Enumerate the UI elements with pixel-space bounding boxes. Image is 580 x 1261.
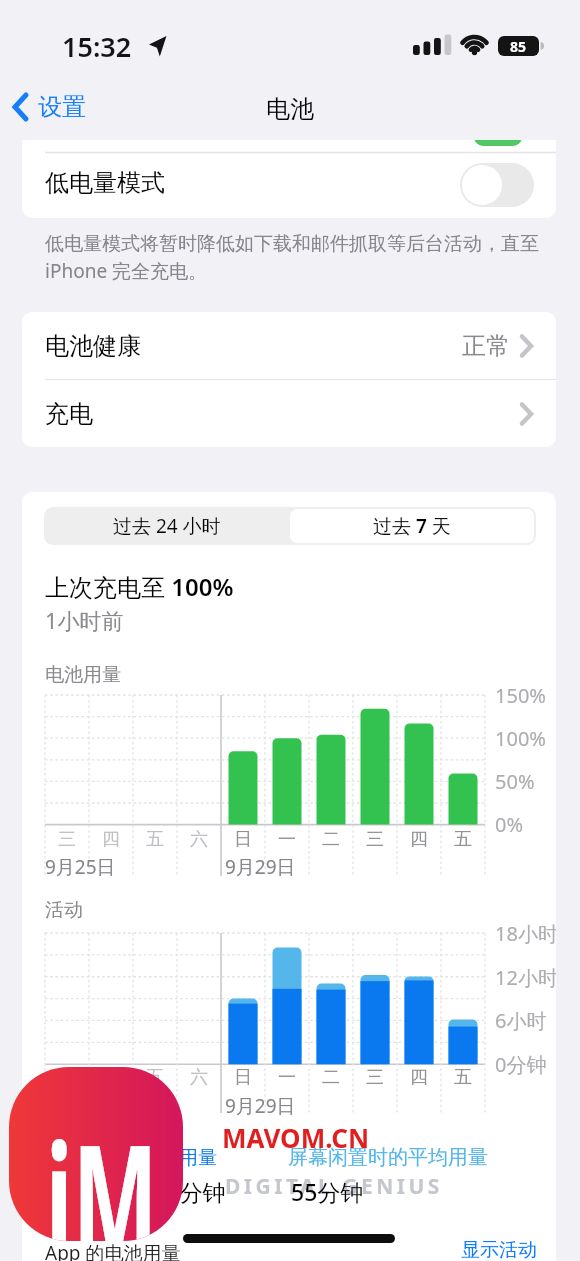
button[interactable]: 电池健康	[22, 312, 556, 380]
staticText: 50%	[495, 768, 535, 795]
staticText: 三	[58, 828, 76, 851]
staticText: 六	[190, 1066, 208, 1089]
button[interactable]: 设置	[12, 92, 86, 122]
staticText: 五	[146, 828, 164, 851]
staticText: 12小时	[495, 964, 556, 991]
staticText: 9月29日	[225, 1093, 296, 1119]
staticText: 设置	[38, 92, 86, 122]
button[interactable]: 显示活动	[461, 1238, 537, 1261]
staticText: 充电	[45, 399, 93, 429]
staticText: 一	[278, 828, 296, 851]
staticText: 电池用量	[45, 663, 121, 687]
staticText: 活动	[45, 898, 83, 922]
staticText: MAVOM.CN	[222, 1120, 370, 1155]
staticText: DIGITAL GENIUS	[225, 1172, 443, 1201]
staticText: 二	[322, 1066, 340, 1089]
staticText: 85	[510, 37, 527, 56]
staticText: 三	[366, 1066, 384, 1089]
staticText: 五	[454, 828, 472, 851]
staticText: 四	[410, 1066, 428, 1089]
staticText: 日	[234, 1066, 252, 1089]
staticText: 低电量模式	[45, 168, 165, 198]
staticText: 三	[366, 828, 384, 851]
staticText: 0分钟	[495, 1051, 547, 1078]
staticText: 0%	[495, 811, 524, 838]
staticText: 五	[454, 1066, 472, 1089]
staticText: 100%	[495, 725, 546, 752]
staticText: 9月25日	[45, 854, 116, 880]
staticText: 正常	[462, 331, 510, 361]
staticText: 电池健康	[45, 331, 141, 361]
staticText: 电池	[266, 94, 314, 124]
button[interactable]	[460, 163, 534, 207]
staticText: App 的电池用量	[45, 1240, 181, 1261]
staticText: 四	[102, 828, 120, 851]
button[interactable]: 低电量模式	[22, 140, 556, 218]
staticText: 屏幕闲置时的平均用量	[288, 1145, 488, 1170]
staticText: 1小时前	[45, 605, 124, 635]
button[interactable]: 充电	[22, 380, 556, 447]
button[interactable]	[290, 509, 534, 543]
staticText: 六	[190, 828, 208, 851]
staticText: 过去 7 天	[373, 513, 451, 539]
staticText: 一	[278, 1066, 296, 1089]
staticText: 日	[234, 828, 252, 851]
staticText: 屏幕开启时的平均用量	[27, 1146, 217, 1170]
staticText: 6小时	[495, 1007, 547, 1034]
staticText: 1小时32分钟	[94, 1176, 226, 1207]
staticText: 四	[102, 1066, 120, 1089]
staticText: 9月29日	[225, 854, 296, 880]
staticText: 55分钟	[291, 1176, 364, 1207]
staticText: 二	[322, 828, 340, 851]
staticText: 150%	[495, 682, 546, 709]
staticText: 上次充电至 100%	[45, 570, 234, 603]
staticText: 低电量模式将暂时降低如下载和邮件抓取等后台活动，直至 iPhone 完全充电。	[45, 232, 539, 284]
staticText: iM	[46, 1094, 150, 1241]
button[interactable]: 过去 24 小时	[44, 507, 290, 545]
staticText: 15:32	[62, 28, 132, 65]
staticText: 过去 24 小时	[113, 513, 221, 539]
staticText: 五	[146, 1066, 164, 1089]
staticText: 四	[410, 828, 428, 851]
staticText: 三	[58, 1066, 76, 1089]
staticText: 18小时	[495, 920, 556, 947]
